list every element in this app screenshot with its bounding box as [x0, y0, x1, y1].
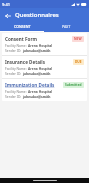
staticText: 9:41: [2, 2, 10, 7]
staticText: Sender ID:: [5, 71, 22, 75]
staticText: CONSENT: [14, 24, 31, 29]
button[interactable]: Back: [3, 11, 12, 20]
staticText: Facility Name:: [5, 89, 27, 93]
staticText: johnsdoe@smith: [23, 71, 51, 75]
staticText: Sender ID:: [5, 48, 22, 52]
button[interactable]: CONSENT: [0, 22, 44, 31]
button[interactable]: PAST: [44, 22, 89, 31]
staticText: Consent Form: [5, 36, 37, 42]
staticText: NEW: [74, 37, 82, 41]
staticText: Facility Name:: [5, 43, 27, 47]
staticText: Arena Hospital: [28, 89, 53, 93]
staticText: Arena Hospital: [28, 43, 53, 47]
staticText: johnsdoe@smith: [23, 94, 51, 98]
staticText: Arena Hospital: [28, 66, 53, 70]
staticText: Submitted: [65, 83, 82, 87]
staticText: Questionnaires: [15, 11, 59, 19]
staticText: DUE: [75, 60, 82, 64]
button[interactable]: Immunization Details: [2, 79, 87, 101]
staticText: PAST: [62, 24, 71, 29]
staticText: johnsdoe@smith: [23, 48, 51, 52]
button[interactable]: Insurance Details: [2, 56, 87, 78]
staticText: Immunization Details: [5, 82, 55, 88]
staticText: Insurance Details: [5, 59, 45, 65]
staticText: Sender ID:: [5, 94, 22, 98]
button[interactable]: Consent Form: [2, 33, 87, 55]
staticText: Facility Name:: [5, 66, 27, 70]
